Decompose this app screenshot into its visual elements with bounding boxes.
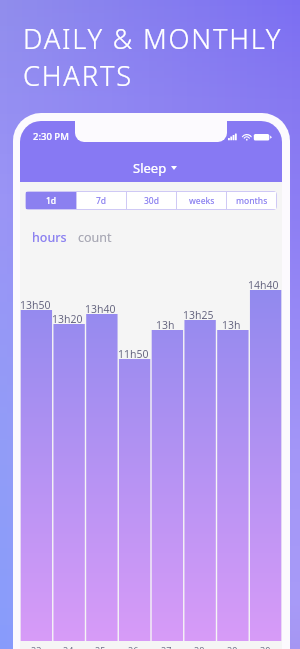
staticText: DAILY & MONTHLY [23,20,283,57]
staticText: 13h50 [20,298,51,312]
staticText: 11h50 [118,347,149,361]
staticText: 13h [156,318,175,332]
staticText: 14h40 [248,278,279,292]
staticText: CHARTS [23,57,133,94]
staticText: 13h20 [52,312,83,326]
staticText: 29 [227,644,238,649]
staticText: 25 [95,644,106,649]
staticText: 7d [96,195,107,207]
staticText: 23 [31,644,42,649]
button[interactable]: Sleep [133,159,177,177]
staticText: 27 [161,644,172,649]
button[interactable]: weeks [177,192,226,209]
button[interactable]: 30d [127,192,176,209]
staticText: 13h [222,318,241,332]
button[interactable]: 7d [77,192,126,209]
staticText: 24 [63,644,74,649]
staticText: 30d [144,195,159,207]
staticText: Sleep [133,159,167,177]
button[interactable]: count [78,229,112,246]
staticText: 30 [260,644,271,649]
staticText: 1d [46,195,57,207]
staticText: weeks [189,195,215,207]
other: Status: signal, wifi, battery [228,132,272,141]
staticText: 13h40 [85,302,116,316]
staticText: months [236,195,268,207]
staticText: 26 [128,644,139,649]
button[interactable]: 1d [26,192,76,209]
button[interactable]: months [227,192,276,209]
staticText: 13h25 [183,308,214,322]
staticText: 28 [194,644,205,649]
staticText: 2:30 PM [33,130,69,143]
button[interactable]: hours [32,229,67,246]
